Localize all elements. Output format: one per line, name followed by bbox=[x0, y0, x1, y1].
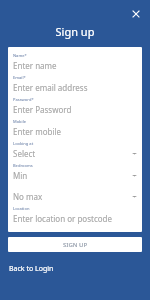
button[interactable]: Password* bbox=[8, 95, 142, 117]
staticText: SIGN UP bbox=[63, 241, 88, 249]
button[interactable]: Bedrooms bbox=[8, 161, 142, 183]
staticText: Enter mobile bbox=[13, 126, 137, 137]
staticText: Enter Password bbox=[13, 104, 137, 115]
button[interactable]: Name* bbox=[8, 51, 142, 73]
button[interactable]: SIGN UP bbox=[8, 237, 142, 252]
staticText: Email* bbox=[13, 75, 26, 80]
staticText: Enter name bbox=[13, 60, 137, 71]
staticText: Sign up bbox=[0, 24, 150, 39]
staticText: Enter location or postcode bbox=[13, 213, 137, 224]
staticText: Back to Login bbox=[9, 264, 54, 274]
button[interactable]: Location bbox=[8, 204, 142, 226]
button[interactable]: Email* bbox=[8, 73, 142, 95]
button[interactable]: Looking at bbox=[8, 139, 142, 161]
staticText: No max bbox=[13, 191, 132, 202]
staticText: Name* bbox=[13, 53, 27, 58]
staticText: Enter email address bbox=[13, 82, 137, 93]
staticText: Location bbox=[13, 206, 30, 211]
staticText: Looking at bbox=[13, 141, 34, 146]
button[interactable]: Back to Login bbox=[8, 262, 55, 276]
button[interactable]: No max bbox=[8, 183, 142, 204]
staticText: Password* bbox=[13, 97, 34, 102]
staticText: Min bbox=[13, 170, 132, 181]
button[interactable]: Mobile bbox=[8, 117, 142, 139]
staticText: Bedrooms bbox=[13, 163, 33, 168]
staticText: Mobile bbox=[13, 119, 27, 124]
button[interactable]: Close bbox=[128, 6, 144, 22]
staticText: Select bbox=[13, 148, 132, 159]
